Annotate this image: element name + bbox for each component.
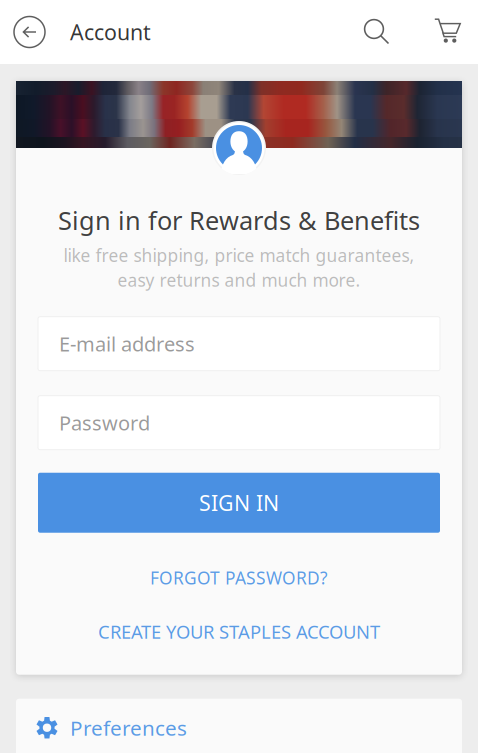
button[interactable]: E-mail address [38, 317, 440, 371]
button[interactable]: Preferences [16, 699, 462, 753]
button[interactable]: Password [38, 396, 440, 450]
button[interactable]: CREATE YOUR STAPLES ACCOUNT [38, 605, 440, 659]
staticText: easy returns and much more. [117, 268, 360, 292]
staticText: E-mail address [59, 330, 195, 357]
button[interactable]: FORGOT PASSWORD? [38, 551, 440, 605]
staticText: FORGOT PASSWORD? [150, 566, 328, 589]
staticText: CREATE YOUR STAPLES ACCOUNT [98, 619, 380, 644]
staticText: Account [70, 17, 151, 47]
staticText: Preferences [70, 714, 187, 742]
button[interactable]: Back [7, 0, 52, 64]
button[interactable]: SIGN IN [38, 473, 440, 533]
staticText: SIGN IN [199, 488, 279, 517]
staticText: Password [59, 409, 150, 436]
staticText: Sign in for Rewards & Benefits [58, 203, 420, 237]
button[interactable]: Search [348, 0, 426, 64]
button[interactable]: Cart [426, 0, 472, 64]
staticText: like free shipping, price match guarante… [63, 243, 414, 267]
button[interactable]: Account [52, 0, 151, 64]
